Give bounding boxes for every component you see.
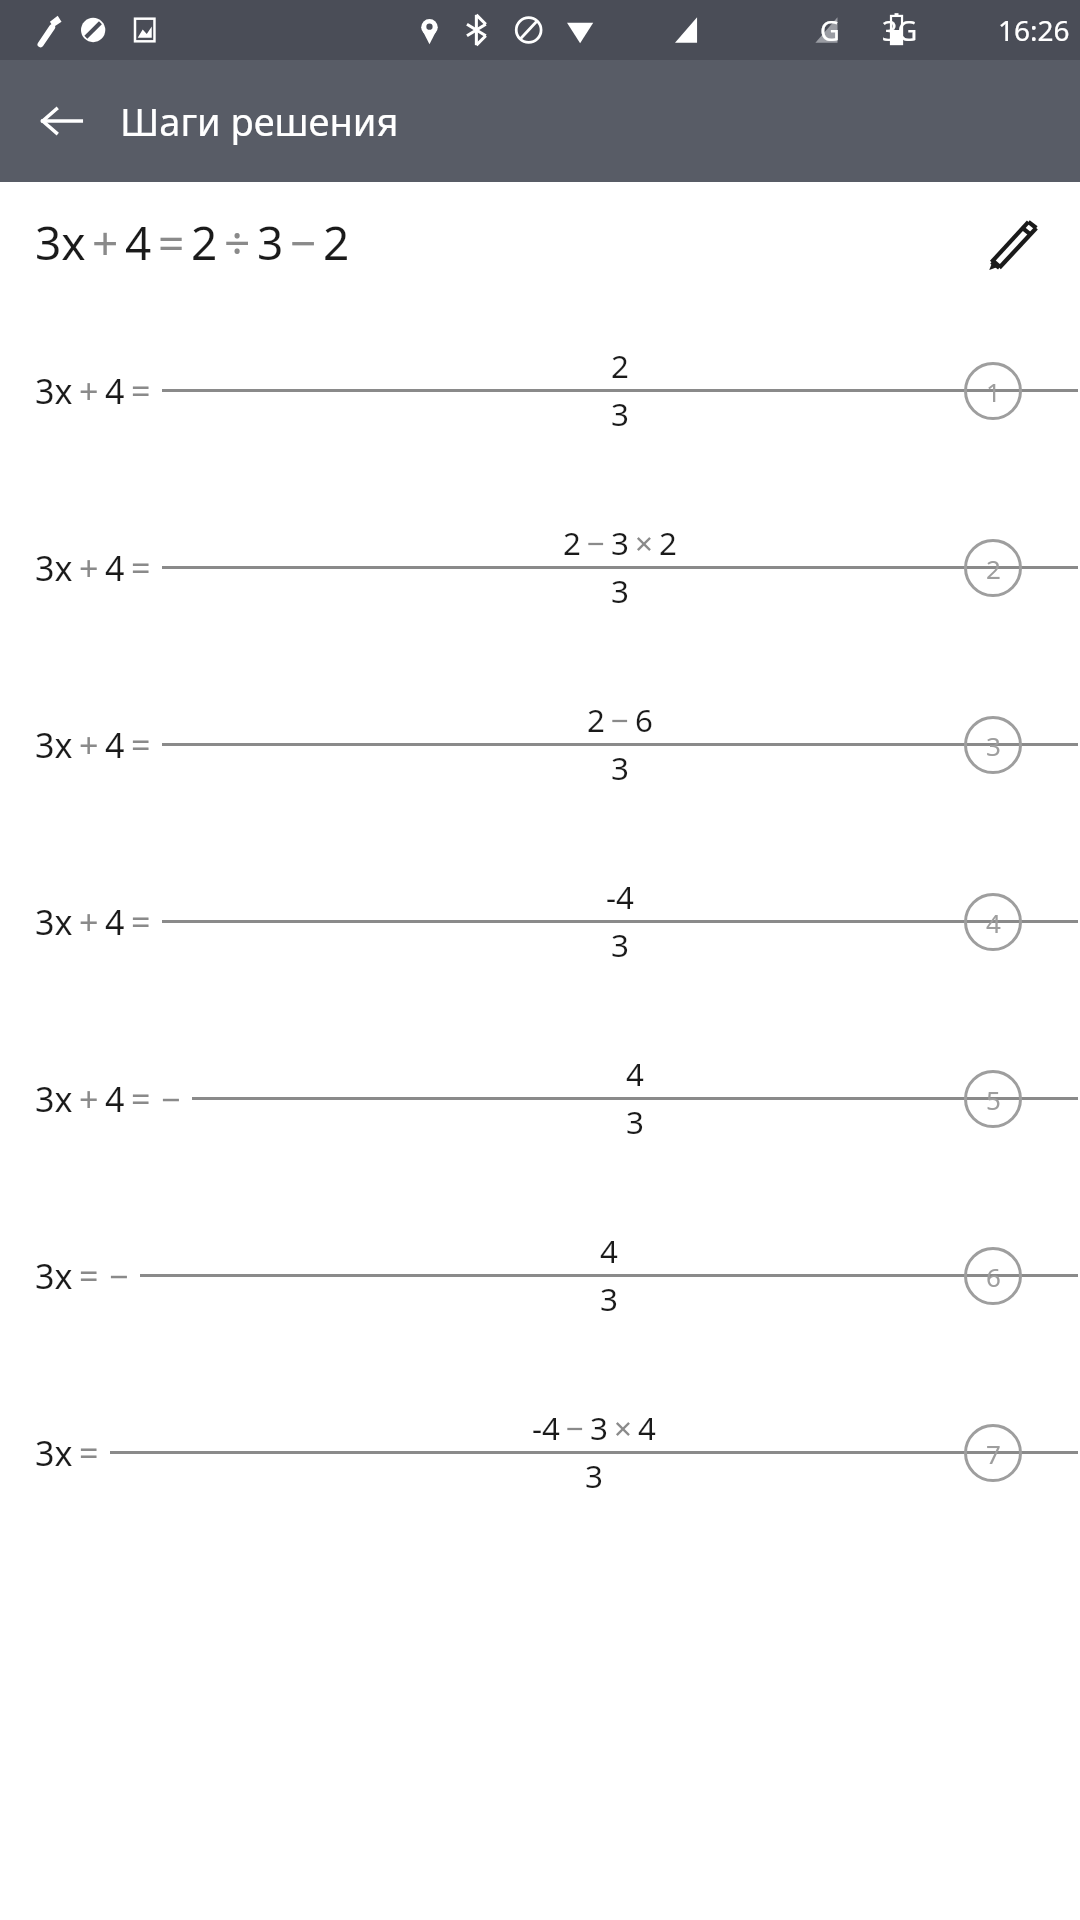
staticText: 3x — [35, 211, 86, 274]
staticText: 4 — [125, 211, 152, 274]
staticText: 2 — [587, 699, 605, 742]
staticText: 7 — [986, 1436, 1001, 1471]
staticText: + — [79, 1076, 99, 1122]
button[interactable]: 3x — [0, 1187, 1080, 1364]
staticText: 4 — [600, 1230, 618, 1273]
staticText: 3x — [35, 545, 73, 591]
staticText: 3 — [986, 728, 1001, 763]
staticText: 6 — [986, 1259, 1001, 1294]
staticText: 3x — [35, 1430, 73, 1476]
staticText: 3 — [626, 1101, 644, 1144]
staticText: × — [614, 1407, 632, 1450]
staticText: 2 — [986, 551, 1001, 586]
staticText: 3 — [600, 1278, 618, 1321]
button[interactable]: 3x — [0, 1010, 1080, 1187]
staticText: 2 — [323, 211, 350, 274]
staticText: = — [131, 1076, 151, 1122]
staticText: G — [820, 12, 840, 49]
staticText: = — [158, 211, 185, 274]
button[interactable]: Назад — [26, 85, 98, 157]
staticText: 1 — [986, 374, 1001, 409]
staticText: − — [290, 211, 317, 274]
staticText: + — [79, 722, 99, 768]
staticText: − — [161, 1076, 181, 1122]
staticText: 3x — [35, 899, 73, 945]
staticText: -4 — [532, 1407, 560, 1450]
staticText: 4 — [105, 545, 125, 591]
staticText: = — [79, 1430, 99, 1476]
staticText: 3 — [585, 1455, 603, 1498]
staticText: 3 — [611, 924, 629, 967]
staticText: = — [131, 899, 151, 945]
staticText: − — [109, 1253, 129, 1299]
staticText: Шаги решения — [120, 95, 399, 147]
staticText: 2 — [191, 211, 218, 274]
staticText: − — [587, 522, 605, 565]
staticText: 2 — [563, 522, 581, 565]
button[interactable]: 3x — [0, 1364, 1080, 1541]
staticText: = — [131, 545, 151, 591]
staticText: 3x — [35, 722, 73, 768]
staticText: + — [79, 545, 99, 591]
button[interactable]: 3x — [0, 833, 1080, 1010]
staticText: + — [79, 368, 99, 414]
staticText: + — [79, 899, 99, 945]
staticText: 4 — [986, 905, 1001, 940]
staticText: 4 — [105, 1076, 125, 1122]
staticText: 4 — [105, 368, 125, 414]
staticText: 3 — [611, 570, 629, 613]
staticText: 3x — [35, 368, 73, 414]
staticText: 5 — [986, 1082, 1001, 1117]
staticText: 3G — [882, 12, 918, 49]
staticText: × — [635, 522, 653, 565]
staticText: 3x — [35, 1076, 73, 1122]
staticText: -4 — [606, 876, 634, 919]
button[interactable]: 3x — [0, 656, 1080, 833]
staticText: 4 — [105, 899, 125, 945]
staticText: 4 — [105, 722, 125, 768]
button[interactable]: 3x — [0, 479, 1080, 656]
staticText: = — [131, 722, 151, 768]
staticText: = — [131, 368, 151, 414]
staticText: 4 — [626, 1053, 644, 1096]
staticText: − — [566, 1407, 584, 1450]
staticText: 3 — [611, 522, 629, 565]
staticText: 3x — [35, 1253, 73, 1299]
staticText: 2 — [611, 345, 629, 388]
staticText: 3 — [611, 747, 629, 790]
staticText: 6 — [635, 699, 653, 742]
button[interactable]: Редактировать — [976, 203, 1054, 281]
staticText: 3 — [590, 1407, 608, 1450]
staticText: ÷ — [224, 211, 251, 274]
staticText: 2 — [659, 522, 677, 565]
staticText: 16:26 — [998, 11, 1070, 49]
staticText: = — [79, 1253, 99, 1299]
staticText: − — [611, 699, 629, 742]
button[interactable]: 3x — [0, 302, 1080, 479]
staticText: 3 — [611, 393, 629, 436]
staticText: 3 — [257, 211, 284, 274]
staticText: + — [92, 211, 119, 274]
staticText: 4 — [638, 1407, 656, 1450]
